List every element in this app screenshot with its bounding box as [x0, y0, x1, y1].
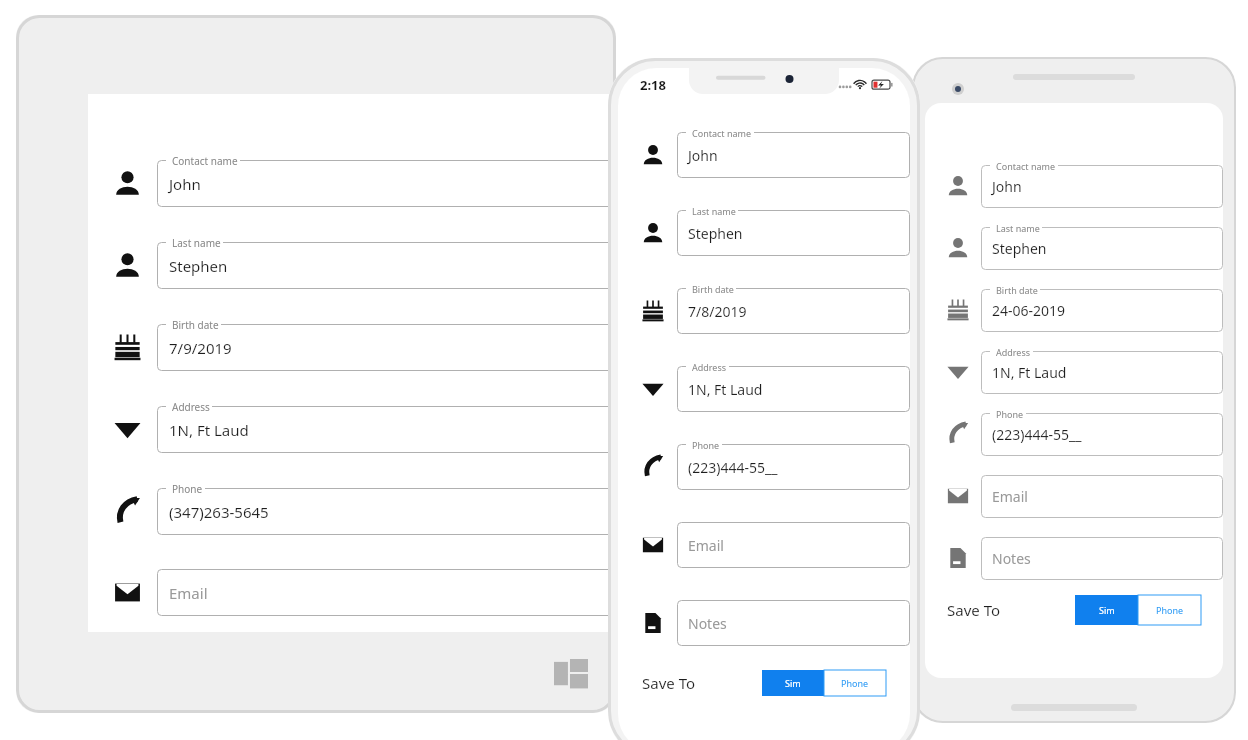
staticText: Phone — [841, 677, 869, 689]
button[interactable]: Email — [981, 475, 1223, 518]
button[interactable]: Notes — [677, 600, 910, 646]
other: Notes — [642, 612, 664, 634]
other: Person — [642, 144, 664, 166]
staticText: 2:18 — [640, 76, 666, 94]
staticText: Contact name — [172, 154, 238, 168]
staticText: 24-06-2019 — [992, 301, 1066, 320]
other: Birth date — [114, 334, 141, 361]
staticText: Sim — [785, 677, 801, 689]
button[interactable]: Email — [677, 522, 910, 568]
staticText: 1N, Ft Laud — [688, 380, 763, 399]
staticText: John — [992, 177, 1022, 196]
other: Email — [947, 485, 969, 507]
other: Email — [114, 579, 141, 606]
button[interactable]: Phone — [981, 413, 1223, 456]
staticText: Contact name — [692, 127, 752, 139]
button[interactable]: Address — [157, 406, 616, 453]
other: Person — [642, 222, 664, 244]
staticText: Last name — [996, 222, 1040, 234]
button[interactable]: Sim — [762, 670, 824, 696]
staticText: Save To — [642, 673, 695, 693]
staticText: John — [688, 146, 718, 165]
button[interactable]: Birth date — [981, 289, 1223, 332]
staticText: Birth date — [172, 318, 219, 332]
staticText: Stephen — [169, 256, 228, 276]
staticText: Sim — [1099, 604, 1115, 616]
button[interactable]: Contact name — [157, 160, 616, 207]
other: Notes — [947, 547, 969, 569]
staticText: Phone — [996, 408, 1024, 420]
button[interactable]: Phone — [1138, 595, 1201, 625]
staticText: 7/9/2019 — [169, 338, 232, 358]
other: Phone — [947, 423, 969, 445]
button[interactable]: Address — [981, 351, 1223, 394]
staticText: Birth date — [692, 283, 734, 295]
staticText: Notes — [992, 549, 1031, 568]
staticText: Phone — [1156, 604, 1184, 616]
staticText: Email — [169, 583, 208, 603]
staticText: Last name — [172, 236, 221, 250]
staticText: (223)444-55__ — [688, 458, 778, 477]
button[interactable]: Phone — [677, 444, 910, 490]
staticText: Stephen — [992, 239, 1047, 258]
other: Birth date — [947, 299, 969, 321]
staticText: Stephen — [688, 224, 743, 243]
other: Person — [947, 237, 969, 259]
other: Windows — [554, 659, 588, 691]
other: Address — [642, 378, 664, 400]
button[interactable]: Phone — [824, 670, 886, 696]
button[interactable]: Last name — [157, 242, 616, 289]
button[interactable]: Birth date — [677, 288, 910, 334]
other: Phone — [642, 456, 664, 478]
staticText: Phone — [692, 439, 720, 451]
button[interactable]: Contact name — [677, 132, 910, 178]
button[interactable]: Birth date — [157, 324, 616, 371]
other: Person — [947, 175, 969, 197]
button[interactable]: Notes — [981, 537, 1223, 580]
staticText: 7/8/2019 — [688, 302, 747, 321]
staticText: Address — [996, 346, 1031, 358]
staticText: (223)444-55__ — [992, 425, 1082, 444]
staticText: Birth date — [996, 284, 1038, 296]
other: Person — [114, 170, 141, 197]
staticText: John — [169, 174, 201, 194]
button[interactable]: Sim — [1075, 595, 1138, 625]
staticText: Last name — [692, 205, 736, 217]
other: Email — [642, 534, 664, 556]
button[interactable]: Last name — [677, 210, 910, 256]
button[interactable]: Last name — [981, 227, 1223, 270]
button[interactable]: Phone — [157, 488, 616, 535]
button[interactable]: Address — [677, 366, 910, 412]
staticText: Email — [992, 487, 1028, 506]
other: Phone — [114, 498, 141, 525]
button[interactable]: Contact name — [981, 165, 1223, 208]
staticText: Save To — [947, 600, 1000, 620]
staticText: Contact name — [996, 160, 1056, 172]
staticText: 1N, Ft Laud — [169, 420, 249, 440]
staticText: Email — [688, 536, 724, 555]
other: Birth date — [642, 300, 664, 322]
other: Address — [947, 361, 969, 383]
staticText: Notes — [688, 614, 727, 633]
staticText: Address — [172, 400, 210, 414]
staticText: 1N, Ft Laud — [992, 363, 1067, 382]
staticText: Address — [692, 361, 727, 373]
button[interactable]: Email — [157, 569, 616, 616]
other: Person — [114, 252, 141, 279]
staticText: (347)263-5645 — [169, 502, 269, 522]
other: Address — [114, 416, 141, 443]
staticText: Phone — [172, 482, 203, 496]
